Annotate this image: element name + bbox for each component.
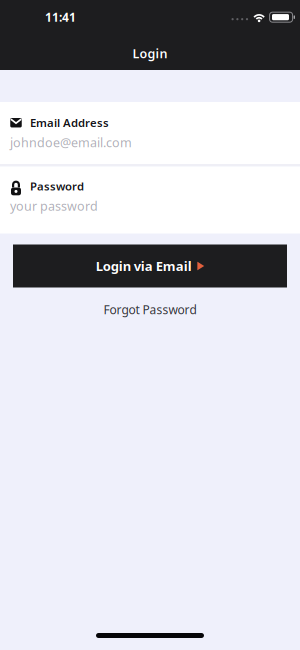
button[interactable]: Login via Email: [13, 244, 287, 287]
staticText: 11:41: [45, 9, 76, 25]
staticText: Login: [132, 45, 167, 62]
staticText: johndoe@email.com: [10, 134, 132, 151]
button[interactable]: Email Address: [0, 102, 300, 164]
staticText: Password: [30, 178, 84, 194]
staticText: Email Address: [30, 115, 109, 130]
staticText: Login via Email: [96, 257, 192, 275]
staticText: your password: [10, 197, 98, 214]
staticText: Forgot Password: [103, 301, 196, 318]
button[interactable]: Password: [0, 166, 300, 233]
button[interactable]: Forgot Password: [103, 301, 196, 318]
